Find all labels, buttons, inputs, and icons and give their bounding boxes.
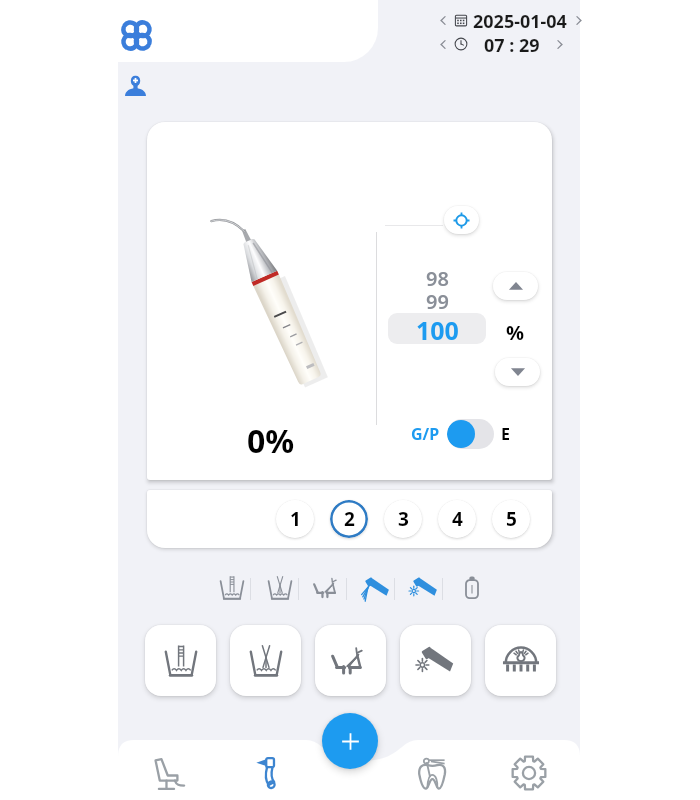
button[interactable]: Shortcut 3	[315, 625, 386, 696]
button[interactable]: Function 6	[448, 570, 496, 606]
button[interactable]: 4	[438, 500, 476, 538]
staticText: 4	[452, 506, 463, 532]
staticText: 1	[290, 506, 301, 532]
staticText: 3	[398, 506, 409, 532]
button[interactable]: G/P	[411, 418, 510, 450]
staticText: 0%	[247, 419, 295, 463]
button[interactable]: 1	[276, 500, 314, 538]
button[interactable]: Shortcut 1	[145, 625, 216, 696]
button[interactable]: 07 : 29	[437, 33, 566, 55]
button[interactable]: Target	[444, 206, 479, 234]
staticText: 2025-01-04	[473, 9, 567, 31]
button[interactable]: Shortcut 5	[485, 625, 556, 696]
button[interactable]: Settings	[502, 748, 556, 798]
button[interactable]: Decrease	[495, 358, 540, 386]
button[interactable]: User	[125, 75, 146, 96]
button[interactable]: Function 2	[256, 570, 304, 606]
staticText: 98	[426, 265, 449, 292]
button[interactable]: Increase	[493, 272, 538, 300]
button[interactable]: Function 1	[208, 570, 256, 606]
staticText: G/P	[411, 423, 440, 445]
staticText: 5	[506, 506, 517, 532]
button[interactable]: 5	[492, 500, 530, 538]
button[interactable]: App logo	[122, 21, 151, 50]
button[interactable]: 2	[330, 500, 368, 538]
button[interactable]: Add	[322, 713, 378, 769]
staticText: 2	[344, 506, 355, 532]
button[interactable]: Function 5	[400, 570, 448, 606]
button[interactable]: 3	[384, 500, 422, 538]
button[interactable]: Shortcut 2	[230, 625, 301, 696]
button[interactable]: Function 3	[304, 570, 352, 606]
button[interactable]: Handpiece	[239, 748, 293, 798]
staticText: 07 : 29	[484, 33, 540, 55]
staticText: E	[501, 423, 510, 445]
button[interactable]: Tooth	[405, 748, 459, 798]
button[interactable]: Shortcut 4	[400, 625, 471, 696]
button[interactable]: Function 4	[352, 570, 400, 606]
staticText: %	[506, 319, 525, 346]
staticText: 100	[416, 313, 459, 344]
staticText: 99	[426, 288, 449, 315]
button[interactable]: Chair	[142, 748, 196, 798]
button[interactable]: 2025-01-04	[437, 9, 585, 31]
